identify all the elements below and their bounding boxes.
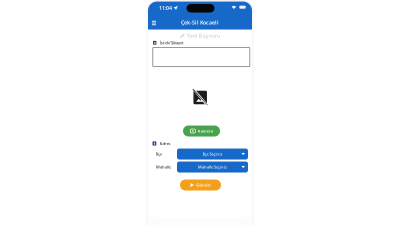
staticText: Mahalle Seçiniz <box>198 164 227 170</box>
staticText: Yeni Başvuru <box>187 32 220 39</box>
button[interactable]: Kamera <box>183 125 220 136</box>
staticText: Çek-Sil Kocaeli <box>181 19 219 26</box>
button[interactable]: Gönder <box>180 179 221 190</box>
staticText: Adres <box>160 141 171 146</box>
staticText: İlçe Seçiniz <box>202 151 222 157</box>
staticText: İlçe <box>156 151 162 157</box>
staticText: Mahalle <box>156 164 171 170</box>
staticText: Kamera <box>198 128 213 134</box>
button[interactable]: Mahalle Seçiniz <box>177 161 248 172</box>
staticText: İstek/Şikayet <box>160 40 184 45</box>
staticText: 11:04 <box>159 4 172 12</box>
button[interactable]: İlçe Seçiniz <box>177 148 248 159</box>
staticText: Gönder <box>196 182 211 188</box>
button[interactable]: Menu <box>148 18 159 27</box>
